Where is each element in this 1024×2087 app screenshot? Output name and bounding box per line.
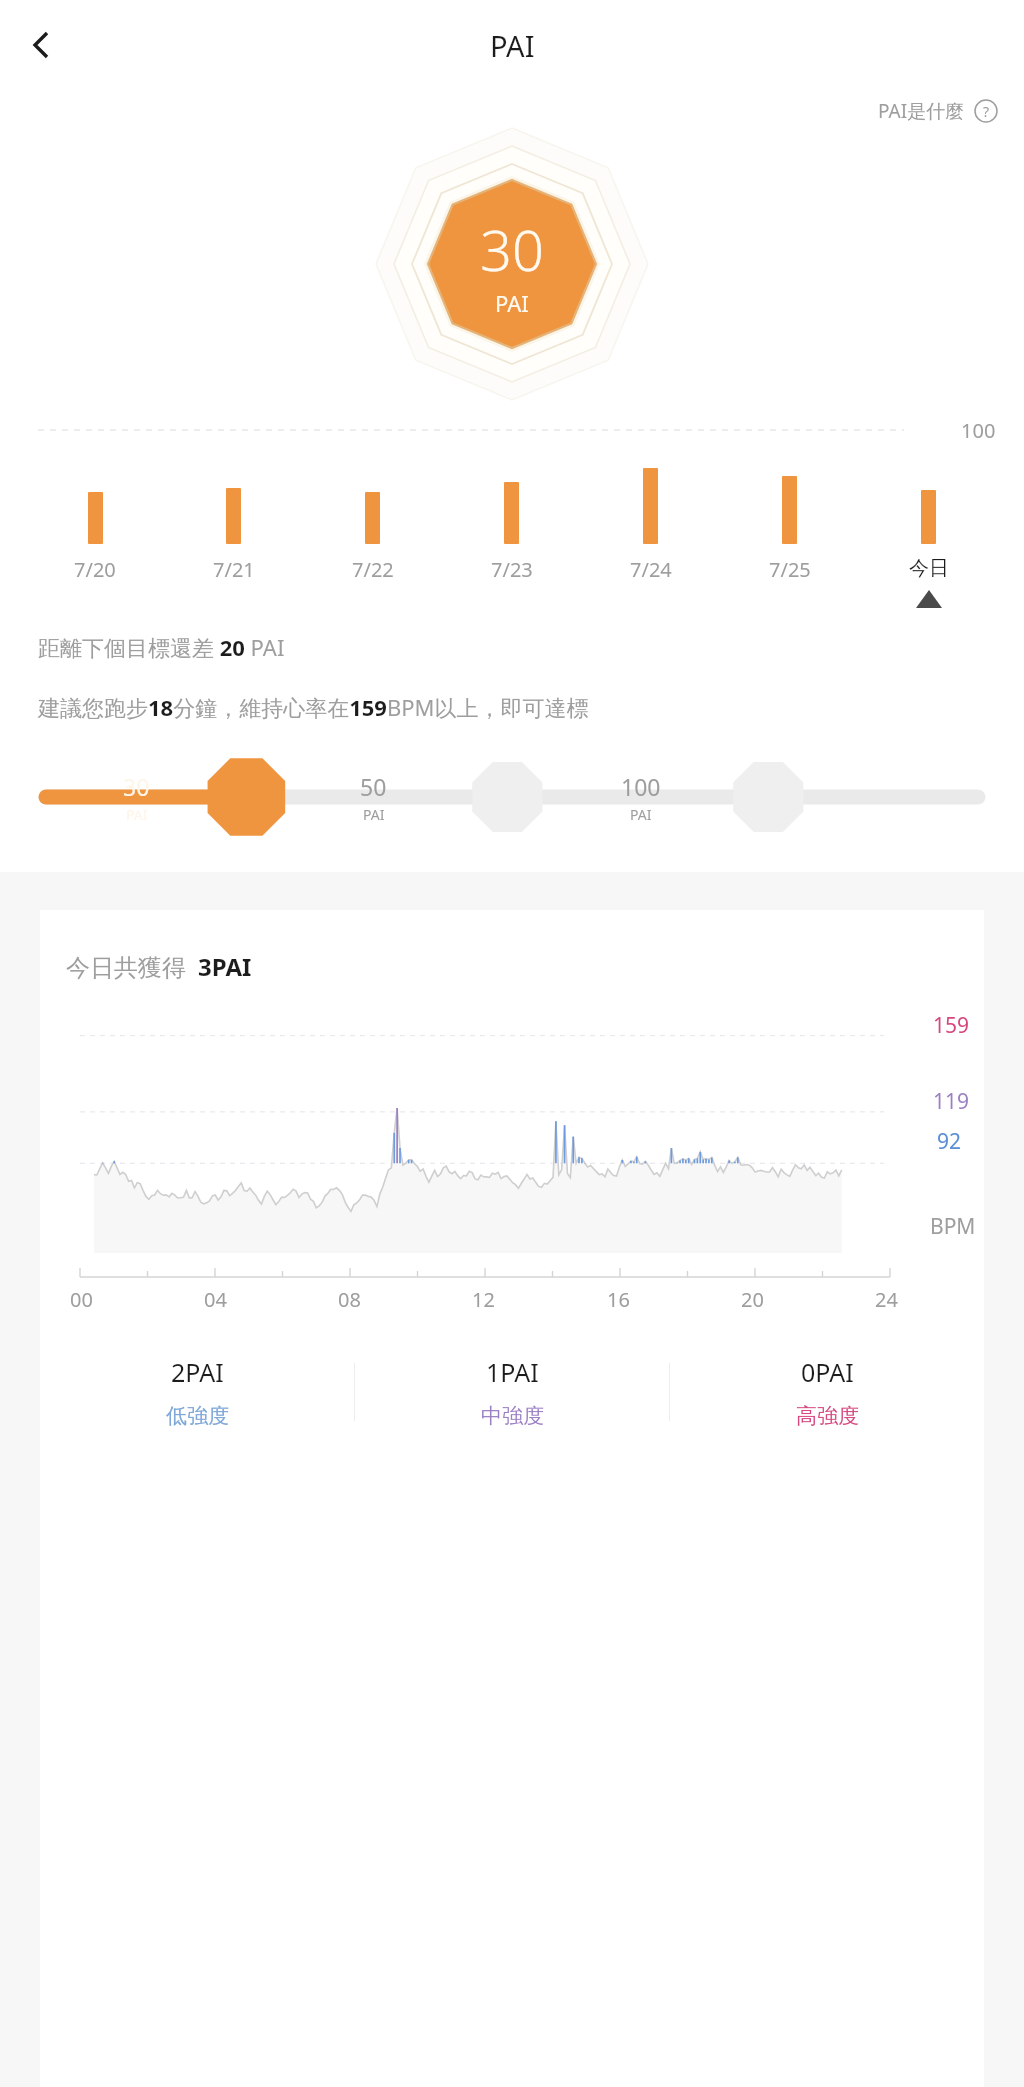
staticText: PAI — [363, 805, 385, 824]
staticText: 7/24 — [630, 556, 672, 583]
staticText: 100 — [961, 417, 996, 444]
staticText: 04 — [204, 1286, 227, 1313]
staticText: 0PAI — [801, 1355, 854, 1389]
button[interactable]: 30 — [0, 722, 1024, 872]
staticText: 12 — [472, 1286, 495, 1313]
staticText: 159 — [933, 1011, 970, 1040]
button[interactable]: PAI是什麼 — [874, 94, 1002, 128]
staticText: 今日 — [909, 556, 949, 581]
button[interactable]: 7/24 — [581, 460, 720, 632]
staticText: ? — [983, 102, 990, 121]
staticText: PAI — [495, 288, 529, 318]
staticText: 7/21 — [213, 556, 255, 583]
staticText: 7/22 — [352, 556, 394, 583]
button[interactable]: 2PAI — [40, 1333, 354, 1451]
staticText: 高強度 — [796, 1403, 859, 1429]
button[interactable]: Back — [10, 14, 72, 76]
staticText: 2PAI — [171, 1355, 224, 1389]
staticText: 今日共獲得 — [66, 953, 186, 983]
button[interactable]: 1PAI — [355, 1333, 669, 1451]
button[interactable]: 今日 — [859, 460, 998, 632]
staticText: BPM — [930, 1212, 976, 1241]
staticText: 7/20 — [74, 556, 116, 583]
staticText: 7/23 — [491, 556, 533, 583]
staticText: 低強度 — [166, 1403, 229, 1429]
staticText: 08 — [338, 1286, 361, 1313]
button[interactable]: 7/21 — [164, 460, 303, 632]
staticText: 1PAI — [486, 1355, 539, 1389]
staticText: 16 — [607, 1286, 630, 1313]
staticText: PAI — [126, 805, 148, 824]
button[interactable]: 7/22 — [303, 460, 442, 632]
staticText: 50 — [360, 771, 387, 802]
staticText: 92 — [937, 1127, 962, 1156]
staticText: 建議您跑步18分鐘，維持心率在159BPM以上，即可達標 — [38, 692, 589, 722]
staticText: 30 — [480, 211, 544, 287]
staticText: 119 — [933, 1087, 970, 1116]
staticText: 20 — [741, 1286, 764, 1313]
button[interactable]: 7/23 — [442, 460, 581, 632]
staticText: PAI是什麼 — [878, 98, 965, 124]
staticText: 3PAI — [198, 950, 252, 983]
staticText: PAI — [490, 26, 535, 65]
staticText: 24 — [875, 1286, 898, 1313]
staticText: 7/25 — [769, 556, 811, 583]
staticText: PAI — [630, 805, 652, 824]
staticText: 距離下個目標還差 20 PAI — [38, 632, 285, 662]
staticText: 100 — [621, 771, 661, 802]
button[interactable]: 7/20 — [26, 460, 164, 632]
button[interactable]: 7/25 — [720, 460, 859, 632]
staticText: 00 — [70, 1286, 93, 1313]
staticText: 中強度 — [481, 1403, 544, 1429]
staticText: 30 — [123, 771, 150, 802]
button[interactable]: 0PAI — [670, 1333, 984, 1451]
